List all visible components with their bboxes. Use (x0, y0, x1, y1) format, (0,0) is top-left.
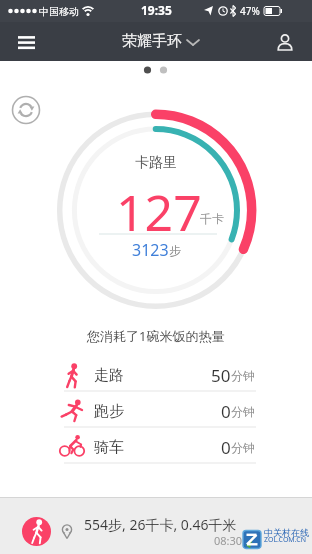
staticText: 荣耀手环 (122, 32, 182, 51)
staticText: 0 (221, 400, 231, 423)
staticText: 分钟 (231, 440, 255, 455)
staticText: 您消耗了1碗米饭的热量 (87, 327, 225, 345)
staticText: 千卡 (200, 211, 224, 226)
staticText: 骑车 (94, 438, 124, 457)
button[interactable] (10, 94, 42, 126)
staticText: ZOL.COM.CN (264, 535, 306, 545)
button[interactable] (22, 517, 51, 546)
staticText: 19:35 (141, 2, 172, 18)
staticText: 50 (211, 364, 231, 387)
button[interactable] (266, 27, 304, 57)
button[interactable]: 荣耀手环 (122, 32, 201, 51)
staticText: 554步, 26千卡, 0.46千米 (84, 515, 237, 534)
staticText: 3123 (132, 239, 169, 261)
staticText: 0 (221, 436, 231, 459)
staticText: 08:30 (214, 533, 243, 548)
staticText: 47% (240, 4, 260, 18)
button[interactable] (8, 27, 44, 57)
staticText: 分钟 (231, 368, 255, 383)
staticText: 步 (169, 243, 181, 258)
button[interactable]: 骑车 (0, 427, 312, 463)
staticText: 跑步 (94, 402, 124, 421)
button[interactable]: 走路 (0, 355, 312, 391)
staticText: 卡路里 (135, 154, 177, 172)
staticText: 127 (116, 178, 202, 246)
button[interactable] (56, 505, 256, 545)
staticText: 中国移动 (39, 5, 79, 18)
staticText: 走路 (94, 366, 124, 385)
staticText: 中关村在线 (264, 527, 309, 538)
staticText: 分钟 (231, 404, 255, 419)
button[interactable]: 跑步 (0, 391, 312, 427)
